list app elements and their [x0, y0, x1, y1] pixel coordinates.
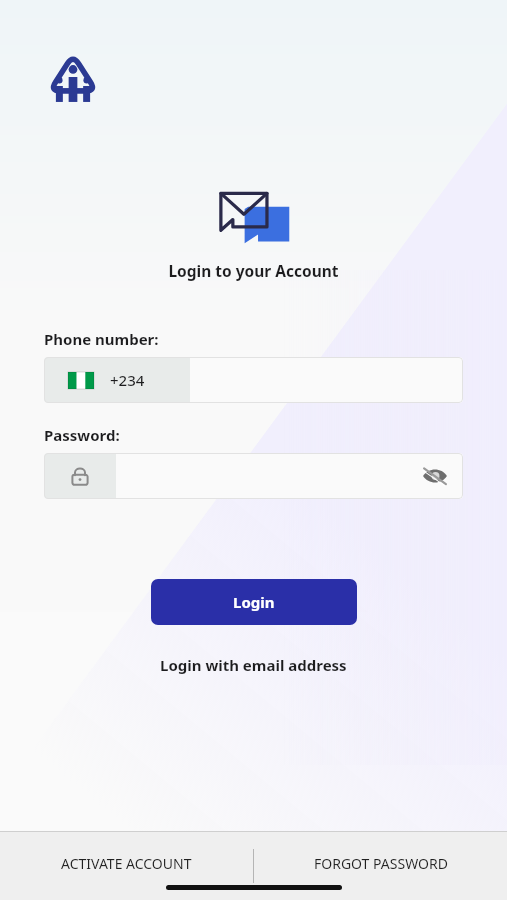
button[interactable]: Login with email address — [150, 651, 357, 679]
other: App logo — [44, 48, 102, 106]
button[interactable]: Login — [151, 579, 357, 625]
button[interactable]: +234 — [44, 357, 190, 403]
staticText: FORGOT PASSWORD — [314, 854, 448, 873]
button[interactable]: FORGOT PASSWORD — [254, 832, 507, 900]
staticText: Login with email address — [160, 655, 347, 675]
staticText: Password: — [44, 425, 120, 445]
staticText: +234 — [110, 370, 145, 390]
button[interactable]: Show password — [413, 454, 457, 498]
staticText: Login — [233, 592, 275, 612]
staticText: Phone number: — [44, 329, 159, 349]
staticText: ACTIVATE ACCOUNT — [61, 854, 192, 873]
button[interactable]: Show password — [44, 453, 463, 499]
staticText: Login to your Account — [0, 260, 507, 281]
button[interactable]: ACTIVATE ACCOUNT — [0, 832, 253, 900]
button[interactable]: +234 — [44, 357, 463, 403]
